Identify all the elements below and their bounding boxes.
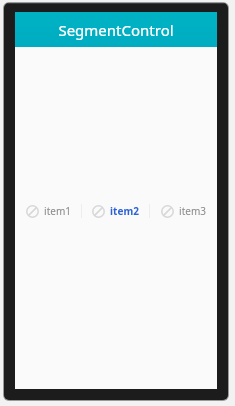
other: Item icon [26,205,39,218]
staticText: item3 [179,204,206,218]
other: Item icon [161,205,174,218]
button[interactable]: Item icon [15,200,81,222]
button[interactable]: Item icon [82,200,149,222]
staticText: SegmentControl [58,20,174,40]
button[interactable]: Item icon [150,200,217,222]
other: Item icon [92,205,105,218]
staticText: item1 [44,204,71,218]
staticText: item2 [110,204,139,218]
